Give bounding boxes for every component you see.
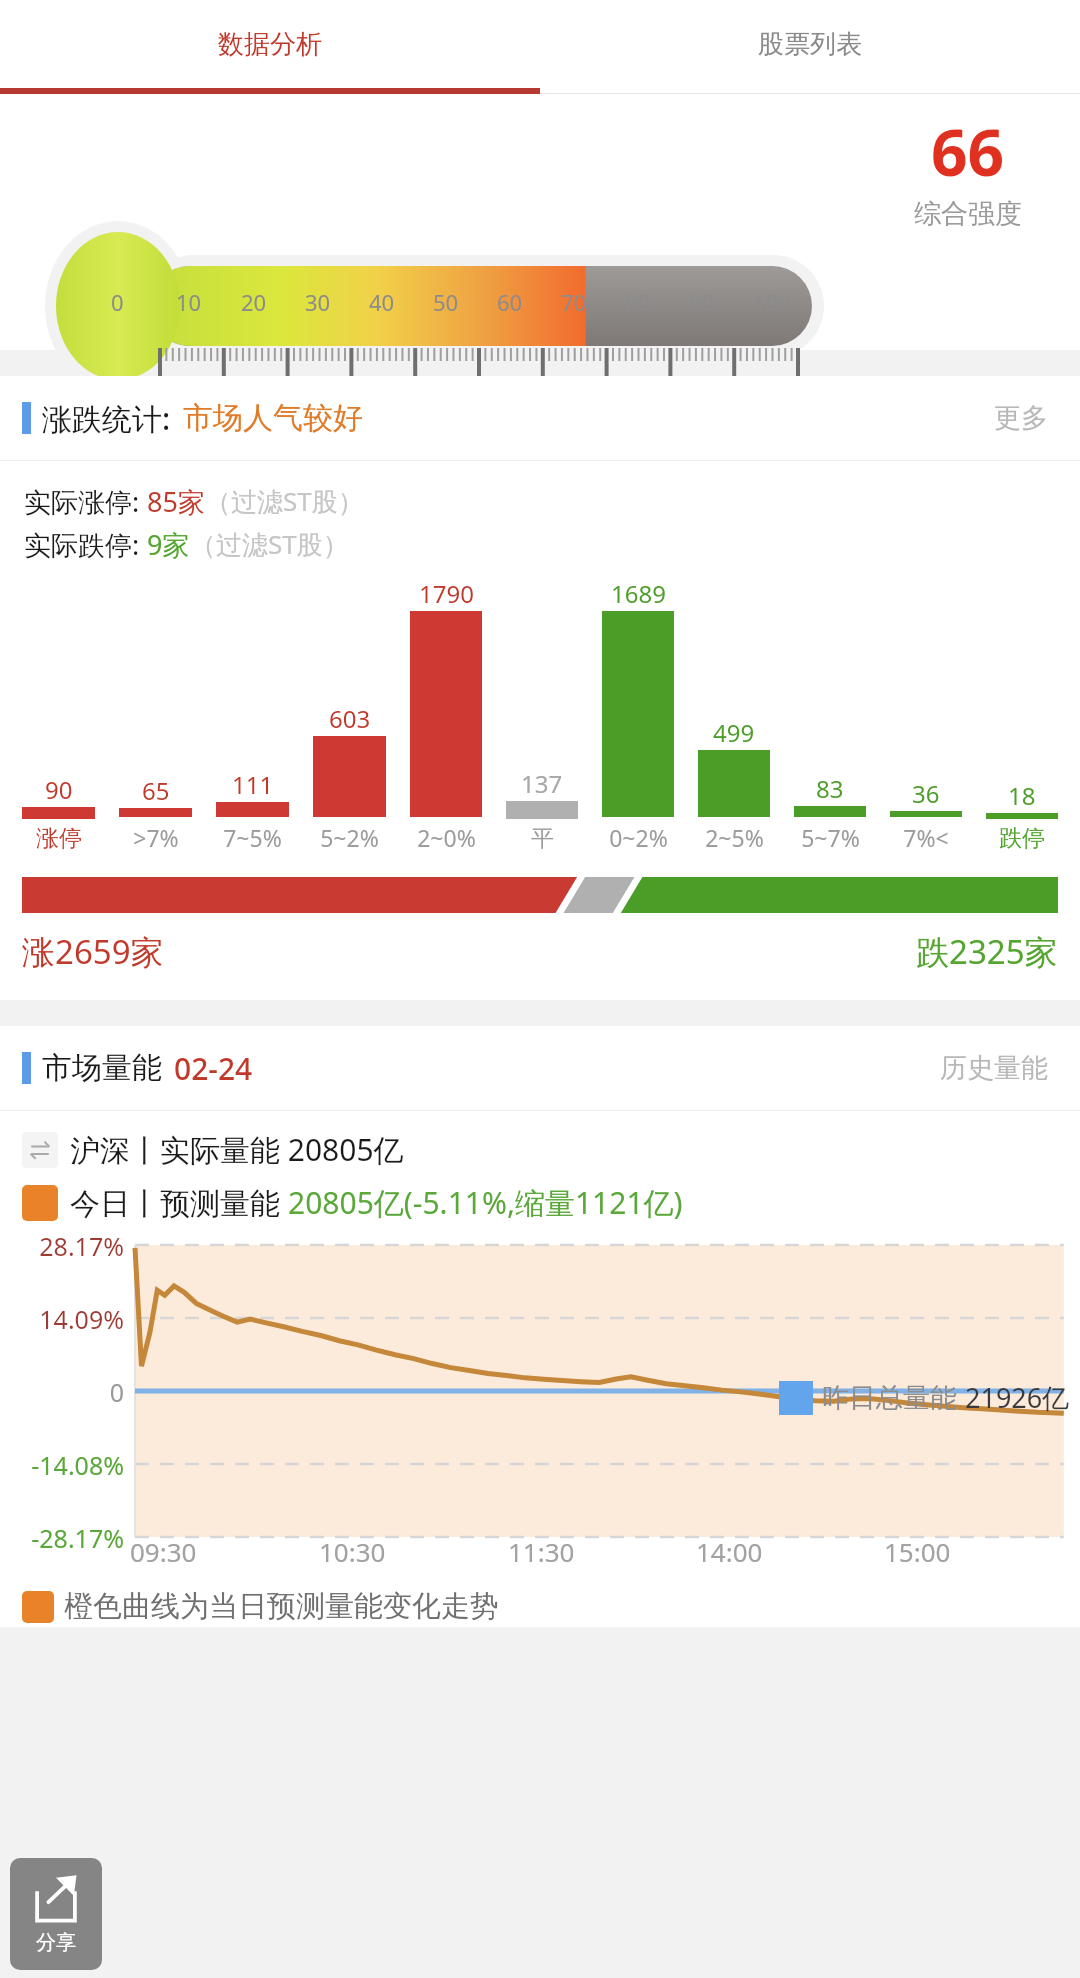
staticText: 跌2325家	[916, 929, 1058, 974]
staticText: 橙色曲线为当日预测量能变化走势	[64, 1588, 499, 1625]
staticText: 30	[305, 287, 331, 317]
staticText: 涨跌统计:	[42, 398, 171, 439]
staticText: 市场量能	[42, 1049, 162, 1087]
staticText: -28.17%	[0, 1521, 124, 1555]
staticText: 实际涨停:	[24, 483, 147, 520]
staticText: 100	[753, 287, 791, 317]
staticText: 跌停	[999, 824, 1045, 853]
staticText: 10:30	[319, 1534, 386, 1569]
staticText: 综合强度	[914, 197, 1022, 231]
staticText: 5~2%	[320, 822, 379, 853]
staticText: 603	[329, 702, 371, 735]
staticText: 沪深丨实际量能 20805亿	[70, 1129, 404, 1170]
staticText: >7%	[133, 822, 179, 853]
staticText: 18	[1008, 779, 1036, 812]
staticText: 14.09%	[0, 1302, 124, 1336]
staticText: 历史量能	[940, 1051, 1048, 1085]
staticText: 数据分析	[218, 28, 322, 61]
staticText: 昨日总量能	[822, 1381, 957, 1415]
staticText: （过滤ST股）	[205, 483, 364, 519]
staticText: 今日丨预测量能	[70, 1182, 288, 1223]
staticText: 7%<	[903, 822, 949, 853]
staticText: 11:30	[508, 1534, 575, 1569]
staticText: 80	[625, 287, 651, 317]
staticText: 60	[497, 287, 523, 317]
staticText: -14.08%	[0, 1448, 124, 1482]
staticText: 40	[369, 287, 395, 317]
staticText: 90	[689, 287, 715, 317]
staticText: 0~2%	[609, 822, 668, 853]
staticText: 70	[561, 287, 587, 317]
staticText: 涨2659家	[22, 929, 164, 974]
staticText: 0	[111, 287, 124, 317]
staticText: 20	[241, 287, 267, 317]
staticText: 09:30	[130, 1534, 197, 1569]
staticText: 499	[713, 716, 755, 749]
button[interactable]: 分享	[10, 1858, 102, 1970]
staticText: 36	[912, 777, 940, 810]
staticText: 14:00	[696, 1534, 763, 1569]
staticText: 2~5%	[705, 822, 764, 853]
staticText: 50	[433, 287, 459, 317]
staticText: 市场人气较好	[183, 399, 363, 437]
staticText: 分享	[36, 1930, 76, 1955]
staticText: 21926亿	[965, 1379, 1070, 1416]
staticText: 02-24	[174, 1048, 253, 1089]
staticText: 15:00	[884, 1534, 951, 1569]
staticText: 10	[176, 287, 202, 317]
button[interactable]: 股票列表	[540, 0, 1080, 88]
staticText: 66	[931, 108, 1005, 195]
staticText: 更多	[994, 401, 1048, 435]
staticText: 9家	[147, 526, 190, 563]
staticText: 0	[0, 1375, 124, 1409]
staticText: 实际跌停:	[24, 526, 147, 563]
staticText: 7~5%	[223, 822, 282, 853]
staticText: 5~7%	[801, 822, 860, 853]
staticText: 28.17%	[0, 1229, 124, 1263]
staticText: 90	[45, 773, 73, 806]
staticText: 111	[232, 768, 274, 801]
staticText: 85家	[147, 483, 205, 520]
staticText: 65	[142, 774, 170, 807]
staticText: 平	[531, 824, 554, 853]
staticText: 涨停	[36, 824, 82, 853]
staticText: 2~0%	[417, 822, 476, 853]
staticText: 股票列表	[758, 28, 862, 61]
staticText: 1689	[611, 577, 666, 610]
button[interactable]: 数据分析	[0, 0, 540, 88]
staticText: 83	[816, 772, 844, 805]
button[interactable]: 更多	[988, 395, 1054, 441]
staticText: （过滤ST股）	[190, 526, 349, 562]
staticText: 137	[521, 767, 563, 800]
staticText: 20805亿(-5.11%,缩量1121亿)	[288, 1182, 683, 1223]
staticText: 1790	[419, 577, 474, 610]
button[interactable]: 历史量能	[934, 1045, 1054, 1091]
